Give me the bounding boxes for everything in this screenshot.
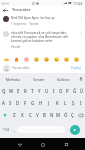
button[interactable]: Home — [38, 140, 47, 149]
staticText: Ğ — [73, 88, 77, 94]
staticText: D — [16, 100, 20, 106]
button[interactable]: Emoji — [23, 56, 29, 62]
staticText: Kullanıcı — [57, 77, 70, 81]
button[interactable]: Emoji — [63, 56, 69, 62]
button[interactable]: Backspace — [76, 109, 85, 121]
staticText: V — [36, 112, 39, 118]
button[interactable]: I — [77, 97, 85, 109]
staticText: Ş — [72, 100, 75, 106]
button[interactable]: Recents — [62, 140, 71, 149]
button[interactable]: Back — [2, 7, 9, 14]
button[interactable]: Like — [78, 16, 83, 21]
staticText: ?123 — [3, 128, 10, 132]
button[interactable]: L — [61, 97, 69, 109]
staticText: Z — [13, 112, 16, 118]
button[interactable]: Back — [15, 140, 24, 149]
button[interactable]: Ö — [62, 109, 69, 121]
staticText: L — [64, 100, 67, 106]
staticText: R — [24, 88, 27, 94]
staticText: , — [14, 127, 15, 132]
staticText: B — [43, 112, 46, 118]
button[interactable]: U — [43, 84, 50, 97]
button[interactable]: ?123 — [0, 121, 12, 138]
button[interactable]: E — [15, 84, 22, 97]
button[interactable]: Kullanıcı — [51, 73, 76, 84]
staticText: C — [29, 112, 32, 118]
button[interactable]: B — [41, 109, 48, 121]
staticText: Ö — [64, 112, 68, 118]
staticText: I — [53, 88, 55, 94]
button[interactable]: Ğ — [71, 84, 78, 97]
staticText: elsa.vkft Konuşacak ve çok haşarıdan, el… — [11, 31, 77, 43]
staticText: G — [31, 100, 35, 106]
button[interactable]: Ü — [78, 84, 85, 97]
staticText: A — [2, 100, 5, 106]
staticText: J — [48, 100, 50, 106]
button[interactable]: Emoji — [13, 56, 19, 62]
staticText: Tamam — [33, 77, 45, 81]
button[interactable]: Emoji — [3, 56, 9, 62]
button[interactable]: Like — [78, 31, 83, 36]
staticText: O — [59, 88, 63, 94]
staticText: N — [50, 112, 54, 118]
staticText: Bin2394 Ayse Ayse bir kaç ay — [11, 16, 55, 20]
button[interactable]: V — [34, 109, 41, 121]
button[interactable]: elsa.vkft Konuşacak ve çok haşarıdan, el… — [0, 31, 85, 49]
button[interactable]: M — [55, 109, 62, 121]
button[interactable]: G — [29, 97, 37, 109]
staticText: F — [24, 100, 27, 106]
staticText: Yorumlar — [12, 7, 31, 13]
staticText: H — [39, 100, 43, 106]
staticText: X — [21, 112, 24, 118]
button[interactable]: Shift — [0, 109, 10, 121]
button[interactable]: Emoji — [33, 56, 39, 62]
staticText: Paylaş — [71, 66, 81, 70]
staticText: . — [67, 127, 68, 132]
button[interactable]: P — [64, 84, 71, 97]
staticText: U — [45, 88, 49, 94]
button[interactable]: N — [48, 109, 55, 121]
button[interactable]: Y — [36, 84, 43, 97]
button[interactable]: H — [37, 97, 45, 109]
button[interactable]: Send — [70, 125, 80, 135]
button[interactable]: Ç — [69, 109, 76, 121]
button[interactable]: C — [26, 109, 34, 121]
button[interactable]: D — [14, 97, 21, 109]
staticText: 1 beğenme Yanıtla — [11, 22, 39, 26]
staticText: M — [56, 112, 61, 118]
button[interactable]: X — [18, 109, 26, 121]
button[interactable]: Q — [0, 84, 8, 97]
button[interactable]: Tamam — [26, 73, 51, 84]
button[interactable]: Bin2394 Ayse Ayse bir kaç ay — [0, 16, 85, 26]
staticText: K — [56, 100, 59, 106]
button[interactable]: , — [12, 121, 17, 138]
button[interactable]: Ş — [69, 97, 77, 109]
staticText: I — [80, 100, 82, 106]
button[interactable]: R — [22, 84, 29, 97]
button[interactable]: Paylaş — [70, 65, 82, 71]
button[interactable]: O — [57, 84, 64, 97]
button[interactable]: W — [8, 84, 15, 97]
button[interactable]: Voice input — [76, 73, 85, 84]
staticText: Y — [38, 88, 41, 94]
staticText: P — [66, 88, 69, 94]
staticText: T — [31, 88, 34, 94]
button[interactable]: Merhaba — [0, 73, 26, 84]
button[interactable]: K — [53, 97, 61, 109]
button[interactable]: Z — [10, 109, 18, 121]
staticText: E — [17, 88, 20, 94]
button[interactable]: A — [0, 97, 7, 109]
button[interactable]: J — [45, 97, 53, 109]
button[interactable]: F — [21, 97, 29, 109]
button[interactable]: S — [7, 97, 14, 109]
staticText: Q — [2, 88, 6, 94]
button[interactable]: I — [50, 84, 57, 97]
staticText: 17:44 — [73, 1, 83, 6]
button[interactable]: T — [29, 84, 36, 97]
button[interactable]: Emoji — [53, 56, 59, 62]
button[interactable]: Emoji — [43, 56, 49, 62]
button[interactable]: Emoji — [73, 56, 79, 62]
staticText: Ü — [80, 88, 84, 94]
